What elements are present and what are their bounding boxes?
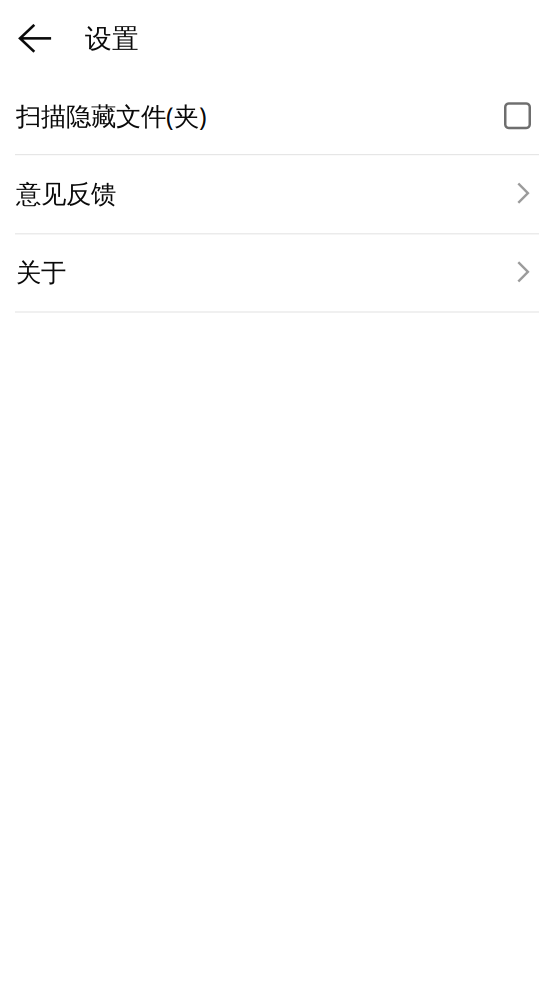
staticText: 关于 [16,257,66,288]
button[interactable]: 扫描隐藏文件(夹) [0,77,554,154]
staticText: 扫描隐藏文件(夹) [16,99,207,132]
button[interactable]: 意见反馈 [0,155,554,233]
staticText: 意见反馈 [16,179,116,210]
staticText: 设置 [85,22,139,55]
button[interactable]: Back [0,9,69,69]
button[interactable]: 关于 [0,234,554,311]
